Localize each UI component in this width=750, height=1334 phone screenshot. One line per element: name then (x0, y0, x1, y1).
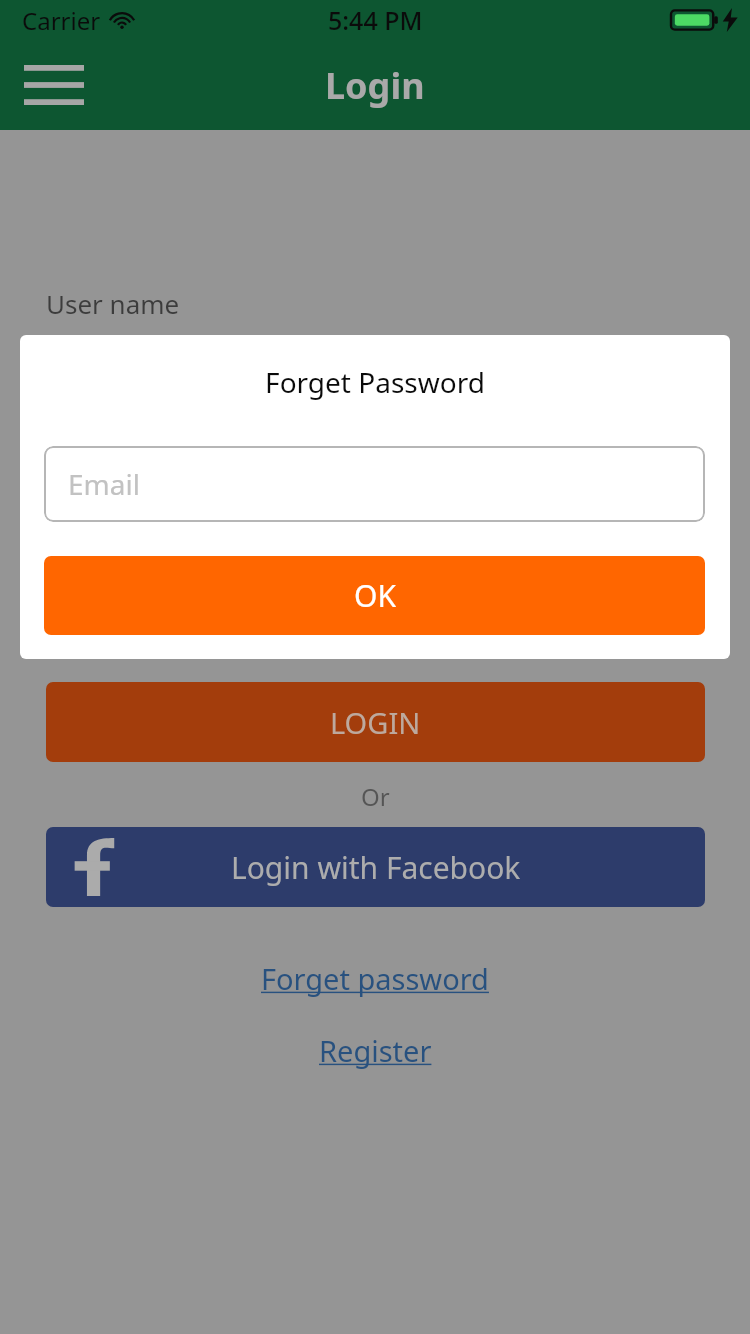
staticText: Register (319, 1031, 432, 1070)
staticText: 5:44 PM (328, 3, 423, 37)
staticText: Forget password (261, 959, 489, 998)
staticText: User name (46, 286, 180, 321)
button[interactable]: Login with Facebook (46, 827, 705, 907)
button[interactable]: Menu (14, 50, 94, 120)
button[interactable]: Email (44, 446, 705, 522)
staticText: Forget Password (265, 363, 485, 401)
staticText: LOGIN (330, 703, 421, 742)
staticText: Login (325, 61, 425, 110)
staticText: Or (361, 780, 390, 813)
staticText: Login with Facebook (231, 847, 521, 888)
button[interactable]: OK (44, 556, 705, 635)
button[interactable]: Register (0, 1027, 750, 1073)
staticText: Email (68, 465, 140, 503)
button[interactable]: LOGIN (46, 682, 705, 762)
staticText: OK (354, 575, 396, 616)
staticText: Carrier (22, 4, 101, 37)
button[interactable]: Forget password (0, 955, 750, 1001)
